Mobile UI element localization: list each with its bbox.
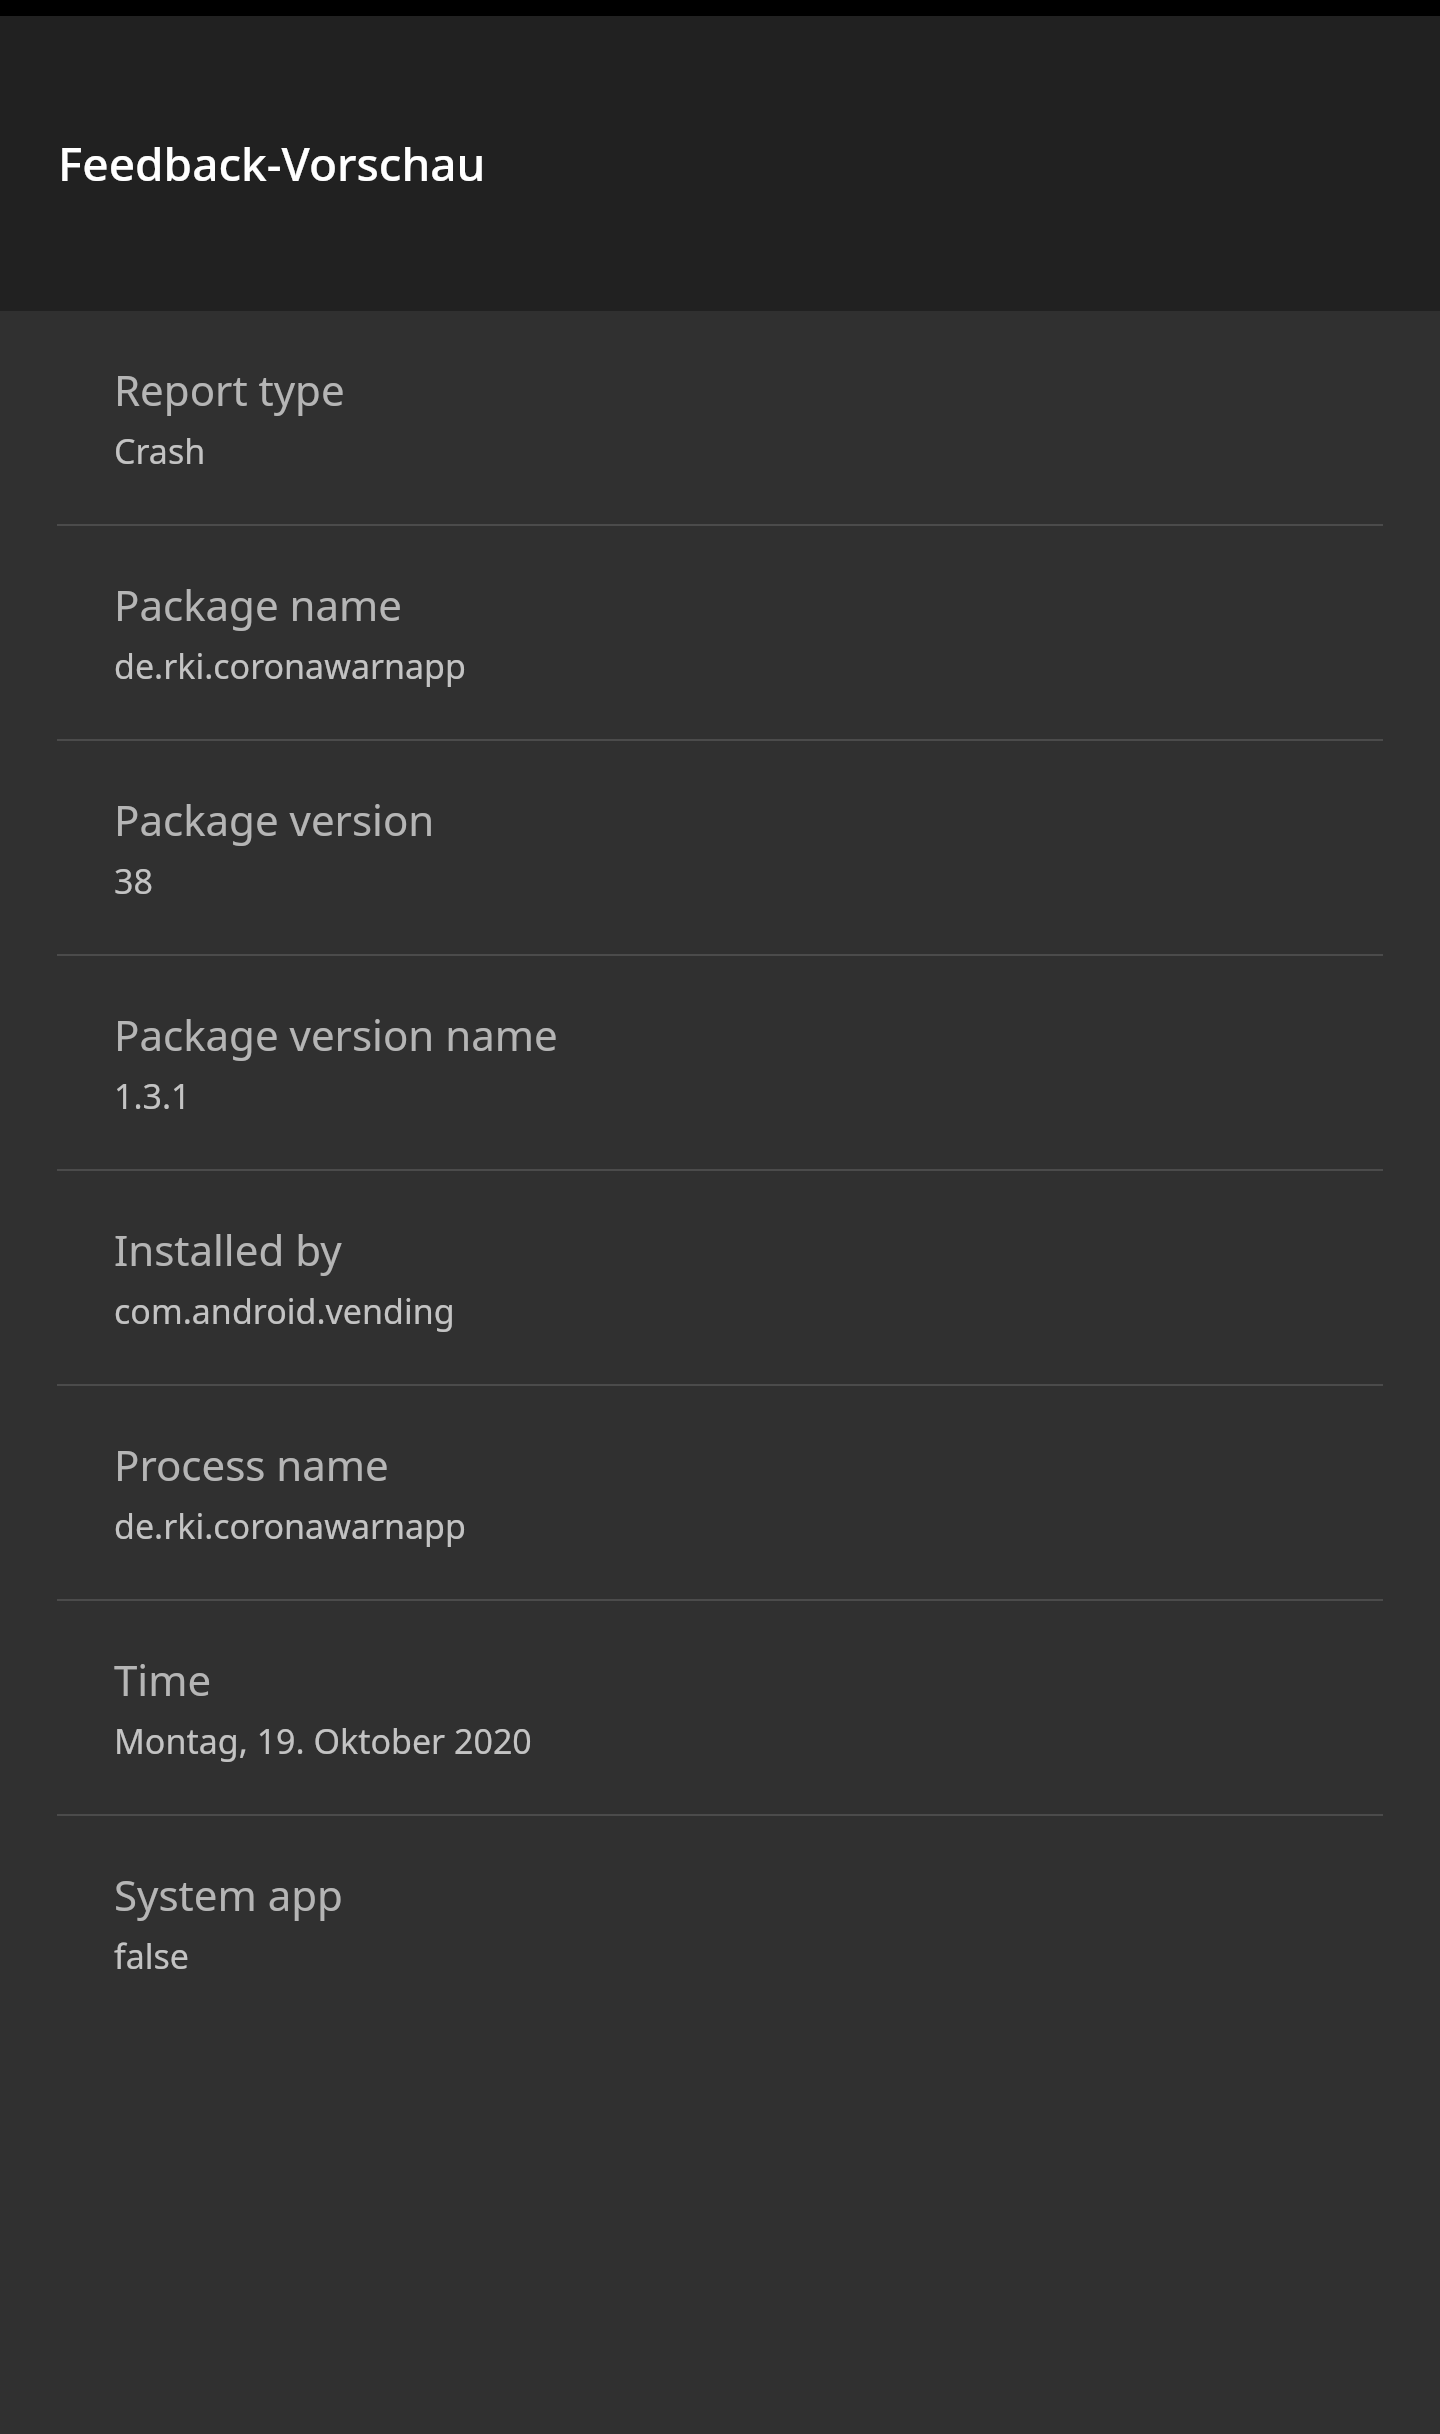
button[interactable]: Package name — [0, 526, 1440, 739]
staticText: System app — [114, 1866, 343, 1923]
staticText: 38 — [114, 858, 153, 904]
staticText: Installed by — [114, 1221, 342, 1278]
staticText: Package version name — [114, 1006, 558, 1063]
staticText: Time — [114, 1651, 212, 1708]
button[interactable]: System app — [0, 1816, 1440, 2029]
staticText: false — [114, 1933, 190, 1979]
button[interactable]: Process name — [0, 1386, 1440, 1599]
button[interactable]: Package version — [0, 741, 1440, 954]
button[interactable]: Installed by — [0, 1171, 1440, 1384]
staticText: 1.3.1 — [114, 1073, 191, 1119]
button[interactable]: Report type — [0, 311, 1440, 524]
staticText: Package name — [114, 576, 403, 633]
staticText: Montag, 19. Oktober 2020 — [114, 1718, 532, 1764]
staticText: com.android.vending — [114, 1288, 455, 1334]
button[interactable]: Package version name — [0, 956, 1440, 1169]
staticText: Report type — [114, 361, 345, 418]
staticText: Feedback-Vorschau — [58, 132, 486, 195]
staticText: Crash — [114, 428, 206, 474]
button[interactable]: Time — [0, 1601, 1440, 1814]
staticText: de.rki.coronawarnapp — [114, 643, 466, 689]
staticText: Process name — [114, 1436, 389, 1493]
staticText: Package version — [114, 791, 435, 848]
staticText: de.rki.coronawarnapp — [114, 1503, 466, 1549]
